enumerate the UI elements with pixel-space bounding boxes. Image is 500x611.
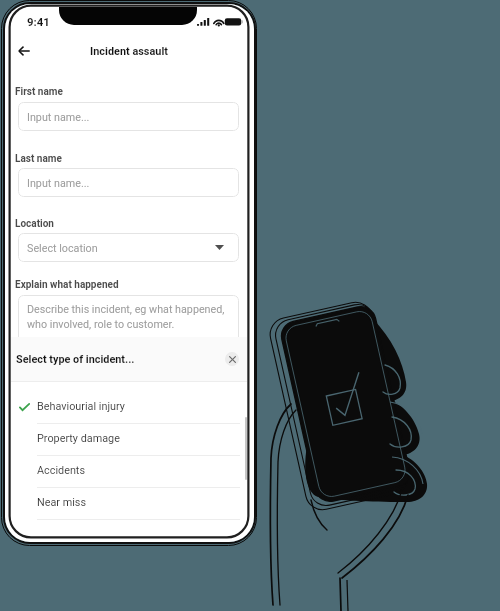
staticText: Location: [15, 218, 54, 230]
staticText: Near miss: [37, 496, 87, 509]
button[interactable]: Property damage: [11, 424, 247, 456]
staticText: Incident assault: [11, 45, 247, 58]
staticText: Behaviourial injury: [37, 400, 125, 413]
staticText: Last name: [15, 153, 62, 165]
staticText: Property damage: [37, 432, 120, 445]
button[interactable]: Input name...: [18, 102, 239, 131]
button[interactable]: Close: [225, 352, 239, 366]
staticText: 9:41: [27, 15, 50, 28]
staticText: First name: [15, 86, 63, 98]
staticText: Explain what happened: [15, 279, 119, 291]
button[interactable]: Select location: [18, 233, 239, 262]
staticText: Select type of incident...: [16, 353, 135, 366]
staticText: Input name...: [27, 111, 90, 124]
staticText: Describe this incident, eg what happened…: [27, 303, 225, 331]
button[interactable]: Accidents: [11, 456, 247, 488]
staticText: Input name...: [27, 177, 90, 190]
button[interactable]: Back: [13, 40, 35, 62]
button[interactable]: Behaviourial injury: [11, 392, 247, 424]
staticText: Accidents: [37, 464, 85, 477]
staticText: Select location: [27, 242, 98, 255]
button[interactable]: Input name...: [18, 168, 239, 197]
button[interactable]: Near miss: [11, 488, 247, 520]
button[interactable]: Describe this incident, eg what happened…: [18, 295, 239, 347]
